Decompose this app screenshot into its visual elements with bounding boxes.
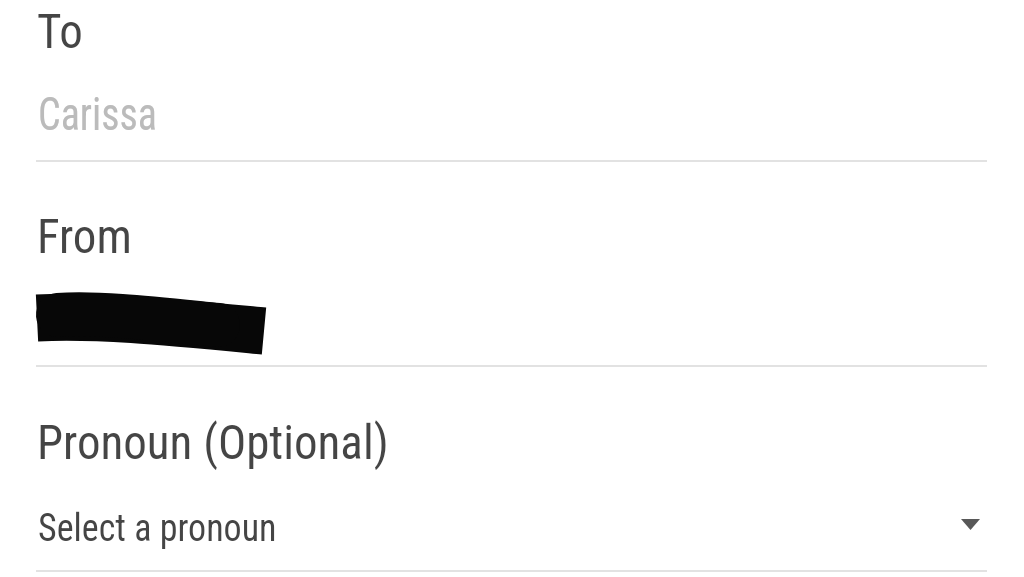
staticText: Pronoun (Optional) xyxy=(37,414,389,471)
button[interactable]: From sender name field xyxy=(36,275,987,363)
button[interactable]: Select a pronoun, drop down menu xyxy=(36,490,987,570)
staticText: From xyxy=(37,208,132,265)
button[interactable]: To recipient name field xyxy=(36,75,987,161)
staticText: To xyxy=(37,3,83,60)
staticText: Carissa xyxy=(38,88,157,142)
staticText: Select a pronoun xyxy=(38,505,277,550)
